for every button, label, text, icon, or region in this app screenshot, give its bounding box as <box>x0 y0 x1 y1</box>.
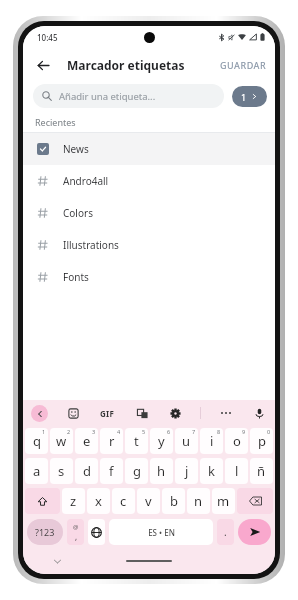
button[interactable]: a <box>25 458 48 484</box>
button[interactable]: r <box>100 428 123 454</box>
button[interactable]: Añadir una etiqueta... <box>33 84 224 108</box>
button[interactable]: m <box>212 488 235 514</box>
button[interactable]: Shift <box>25 488 60 514</box>
staticText: 3 <box>92 428 96 435</box>
staticText: . <box>224 525 227 539</box>
staticText: 10:45 <box>37 32 58 43</box>
button[interactable]: Fonts <box>23 261 275 293</box>
staticText: 5 <box>142 428 146 435</box>
staticText: ?123 <box>35 526 55 538</box>
button[interactable]: . <box>217 519 234 545</box>
staticText: u <box>182 432 191 450</box>
button[interactable]: Illustrations <box>23 229 275 261</box>
staticText: Recientes <box>35 116 76 128</box>
staticText: i <box>210 432 214 450</box>
button[interactable]: Send <box>238 519 271 545</box>
staticText: c <box>120 492 127 510</box>
button[interactable]: k <box>200 458 223 484</box>
button[interactable]: f <box>100 458 123 484</box>
button[interactable]: o <box>225 428 248 454</box>
button[interactable]: GIF <box>98 406 117 421</box>
staticText: t <box>134 432 139 450</box>
staticText: 4 <box>117 428 121 435</box>
staticText: Andro4all <box>63 174 109 188</box>
button[interactable]: Stickers <box>65 405 81 421</box>
staticText: 0 <box>267 428 271 435</box>
button[interactable]: t <box>125 428 148 454</box>
staticText: s <box>58 462 65 480</box>
staticText: x <box>95 492 102 510</box>
button[interactable]: Translate <box>134 405 150 421</box>
staticText: @ <box>73 523 79 531</box>
button[interactable]: @ <box>67 519 84 545</box>
staticText: y <box>158 432 165 450</box>
button[interactable]: 1 <box>232 86 267 107</box>
staticText: q <box>33 432 41 450</box>
staticText: p <box>258 432 266 450</box>
button[interactable]: ?123 <box>27 519 63 545</box>
button[interactable]: p <box>250 428 273 454</box>
button[interactable]: Change language <box>88 519 105 545</box>
button[interactable]: ES • EN <box>109 519 213 545</box>
staticText: 2 <box>67 428 71 435</box>
button[interactable]: h <box>150 458 173 484</box>
staticText: e <box>83 432 91 450</box>
staticText: 6 <box>167 428 171 435</box>
button[interactable]: Backspace <box>237 488 273 514</box>
button[interactable]: d <box>75 458 98 484</box>
staticText: k <box>208 462 215 480</box>
staticText: 1 <box>241 91 247 103</box>
button[interactable]: ñ <box>250 458 273 484</box>
staticText: Colors <box>63 206 93 220</box>
button[interactable]: g <box>125 458 148 484</box>
staticText: g <box>133 462 141 480</box>
button[interactable]: y <box>150 428 173 454</box>
staticText: n <box>194 492 203 510</box>
staticText: ñ <box>257 462 266 480</box>
staticText: w <box>56 432 67 450</box>
staticText: Fonts <box>63 270 89 284</box>
button[interactable]: s <box>50 458 73 484</box>
button[interactable]: j <box>175 458 198 484</box>
staticText: a <box>33 462 41 480</box>
button[interactable]: Colors <box>23 197 275 229</box>
button[interactable]: n <box>187 488 210 514</box>
staticText: GUARDAR <box>220 59 267 71</box>
staticText: 9 <box>242 428 246 435</box>
button[interactable]: Voice input <box>251 405 267 421</box>
button[interactable]: News <box>23 133 275 165</box>
staticText: GIF <box>100 408 115 419</box>
staticText: d <box>83 462 91 480</box>
staticText: h <box>157 462 166 480</box>
staticText: 8 <box>217 428 221 435</box>
button[interactable]: v <box>137 488 160 514</box>
staticText: ES • EN <box>148 527 175 538</box>
staticText: l <box>235 462 239 480</box>
staticText: News <box>63 142 89 156</box>
staticText: 1 <box>42 428 46 435</box>
staticText: f <box>109 462 114 480</box>
button[interactable]: GUARDAR <box>212 54 275 76</box>
staticText: r <box>109 432 115 450</box>
button[interactable]: Settings <box>167 405 183 421</box>
button[interactable]: x <box>87 488 110 514</box>
button[interactable]: w <box>50 428 73 454</box>
button[interactable]: Andro4all <box>23 165 275 197</box>
staticText: j <box>185 462 189 480</box>
staticText: Illustrations <box>63 238 119 252</box>
button[interactable]: z <box>62 488 85 514</box>
staticText: , <box>75 531 78 542</box>
staticText: o <box>233 432 241 450</box>
button[interactable]: b <box>162 488 185 514</box>
button[interactable]: e <box>75 428 98 454</box>
button[interactable]: c <box>112 488 135 514</box>
button[interactable]: Back <box>31 405 48 422</box>
button[interactable]: u <box>175 428 198 454</box>
button[interactable]: q <box>25 428 48 454</box>
staticText: v <box>145 492 152 510</box>
staticText: 7 <box>192 428 196 435</box>
button[interactable]: l <box>225 458 248 484</box>
button[interactable]: More options <box>218 405 234 421</box>
button[interactable]: Back <box>29 51 57 79</box>
button[interactable]: i <box>200 428 223 454</box>
